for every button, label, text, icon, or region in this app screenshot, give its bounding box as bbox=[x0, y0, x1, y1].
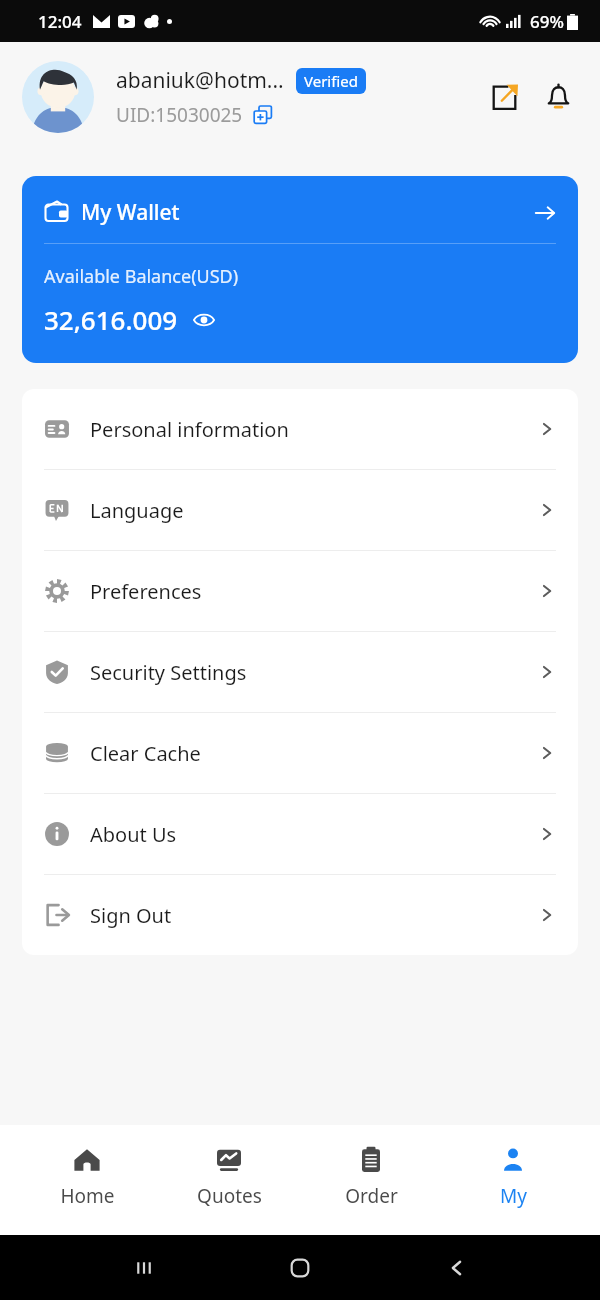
staticText: UID:15030025 bbox=[116, 102, 243, 128]
button[interactable]: Security Settings bbox=[22, 632, 578, 712]
button[interactable]: Preferences bbox=[22, 551, 578, 631]
staticText: Quotes bbox=[197, 1183, 262, 1209]
staticText: Verified bbox=[304, 71, 358, 91]
button[interactable]: Personal information bbox=[22, 389, 578, 469]
staticText: 69% bbox=[530, 10, 564, 33]
button[interactable]: Sign Out bbox=[22, 875, 578, 955]
button[interactable]: Language bbox=[22, 470, 578, 550]
button[interactable]: Copy UID bbox=[253, 105, 273, 125]
staticText: 12:04 bbox=[38, 10, 82, 33]
button[interactable]: Quotes bbox=[174, 1141, 284, 1213]
staticText: About Us bbox=[90, 821, 177, 848]
button[interactable]: My bbox=[458, 1141, 568, 1213]
staticText: Language bbox=[90, 497, 184, 524]
button[interactable]: Notifications bbox=[538, 77, 578, 117]
staticText: Clear Cache bbox=[90, 740, 201, 767]
staticText: abaniuk@hotm... bbox=[116, 66, 284, 95]
button[interactable]: Toggle balance visibility bbox=[192, 308, 216, 332]
staticText: Security Settings bbox=[90, 659, 247, 686]
button[interactable]: About Us bbox=[22, 794, 578, 874]
staticText: Sign Out bbox=[90, 902, 172, 929]
staticText: Personal information bbox=[90, 416, 289, 443]
staticText: 32,616.009 bbox=[44, 302, 178, 337]
button[interactable]: Order bbox=[316, 1141, 426, 1213]
staticText: Order bbox=[345, 1183, 398, 1209]
button[interactable]: Home bbox=[32, 1141, 142, 1213]
button[interactable]: My Wallet bbox=[22, 176, 578, 363]
staticText: Home bbox=[60, 1183, 115, 1209]
staticText: Available Balance(USD) bbox=[44, 264, 239, 289]
staticText: My Wallet bbox=[81, 198, 180, 227]
button[interactable]: Share bbox=[484, 77, 524, 117]
staticText: Preferences bbox=[90, 578, 202, 605]
staticText: My bbox=[500, 1183, 527, 1209]
button[interactable]: Clear Cache bbox=[22, 713, 578, 793]
